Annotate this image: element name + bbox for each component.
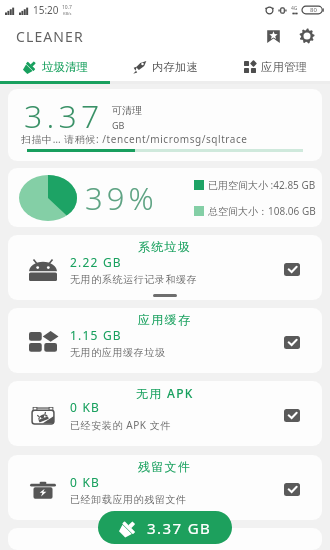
staticText: 应用管理 [261,60,307,74]
staticText: 1.15 GB [70,327,122,343]
staticText: GB [112,119,125,131]
staticText: 可清理 [112,104,142,117]
staticText: 垃圾清理 [42,60,88,74]
button[interactable]: 无用 APK [8,381,322,446]
button[interactable]: 垃圾清理 [0,52,110,81]
staticText: 0 KB [70,399,101,415]
staticText: 80 [310,6,317,14]
staticText: 系统垃圾 [138,239,192,254]
button[interactable]: Select [284,336,300,349]
staticText: 39% [85,177,158,219]
button[interactable]: 系统垃圾 [8,235,322,300]
staticText: 3.37 [24,94,104,138]
staticText: CLEANER [16,27,84,46]
staticText: 残留文件 [138,459,192,474]
staticText: 0 KB [70,474,101,490]
staticText: 15:20 [33,3,59,17]
staticText: 扫描中… 请稍候: /tencent/micromsg/sqltrace [21,132,248,146]
button[interactable]: Select [284,409,300,422]
button[interactable]: Settings [293,22,321,50]
staticText: 总空间大小：108.06 GB [208,204,316,218]
staticText: 3.37 GB [147,518,212,538]
button[interactable]: 应用管理 [220,52,330,81]
staticText: 2.22 GB [70,254,122,270]
staticText: 已经卸载应用的残留文件 [70,493,187,506]
button[interactable]: Select [284,263,300,276]
staticText: 应用缓存 [138,312,192,327]
button[interactable]: 内存加速 [110,52,220,81]
button[interactable]: Bookmark [259,22,287,50]
staticText: KB/s [63,11,72,16]
staticText: 内存加速 [152,60,198,74]
staticText: 无用 APK [136,385,194,401]
staticText: 已用空间大小 :42.85 GB [208,178,316,192]
staticText: 4G [291,5,298,12]
button[interactable]: Select [284,483,300,496]
staticText: 10.7 [62,4,72,11]
button[interactable]: 残留文件 [8,455,322,520]
staticText: 无用的系统运行记录和缓存 [70,273,198,286]
staticText: 已经安装的 APK 文件 [70,418,172,432]
button[interactable]: 应用缓存 [8,308,322,373]
staticText: 无用的应用缓存垃圾 [70,346,166,359]
button[interactable]: 3.37 GB [98,511,232,544]
